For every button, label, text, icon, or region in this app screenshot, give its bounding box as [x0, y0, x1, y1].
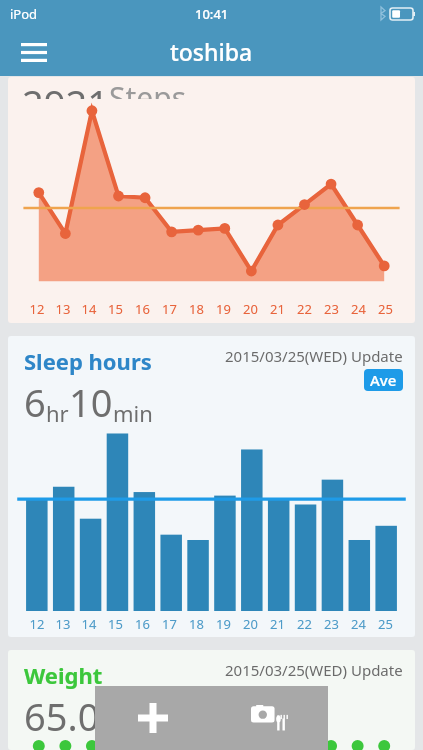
staticText: toshiba — [170, 36, 253, 67]
staticText: 23 — [318, 300, 345, 318]
button[interactable]: Photo meal — [211, 686, 328, 750]
staticText: 2921 — [22, 77, 109, 99]
staticText: 24 — [345, 615, 372, 633]
button[interactable]: Sleep hours — [8, 336, 415, 637]
staticText: 16 — [129, 300, 156, 318]
staticText: 6 — [24, 376, 46, 428]
staticText: 20 — [237, 615, 264, 633]
staticText: 13 — [50, 615, 76, 633]
staticText: 16 — [129, 615, 156, 633]
staticText: 18 — [183, 615, 210, 633]
staticText: hr — [46, 398, 69, 428]
button[interactable]: Weight — [8, 650, 415, 750]
staticText: 21 — [264, 300, 291, 318]
staticText: 15 — [102, 615, 129, 633]
staticText: 17 — [156, 300, 183, 318]
staticText: 22 — [291, 615, 318, 633]
staticText: 18 — [183, 300, 210, 318]
staticText: 25 — [372, 300, 399, 318]
staticText: Sleep hours — [24, 346, 152, 376]
staticText: 23 — [318, 615, 345, 633]
staticText: min — [113, 398, 153, 428]
staticText: 17 — [156, 615, 183, 633]
staticText: 14 — [76, 300, 102, 318]
staticText: 22 — [291, 300, 318, 318]
staticText: 21 — [264, 615, 291, 633]
staticText: 24 — [345, 300, 372, 318]
staticText: 2015/03/25(WED) Update — [225, 660, 403, 680]
button[interactable]: 2921 — [8, 77, 415, 323]
staticText: 12 — [24, 615, 50, 633]
staticText: 25 — [372, 615, 399, 633]
staticText: Ave — [370, 370, 397, 390]
staticText: Weight — [24, 660, 103, 690]
button[interactable]: Menu — [12, 30, 56, 74]
staticText: 19 — [210, 615, 237, 633]
staticText: 65.0 — [24, 690, 100, 742]
staticText: iPod — [10, 5, 38, 23]
staticText: 10 — [69, 376, 113, 428]
staticText: 2015/03/25(WED) Update — [225, 346, 403, 366]
staticText: 15 — [102, 300, 129, 318]
button[interactable]: Ave — [370, 370, 397, 390]
staticText: 19 — [210, 300, 237, 318]
staticText: 12 — [24, 300, 50, 318]
button[interactable]: Add — [95, 686, 211, 750]
staticText: 14 — [76, 615, 102, 633]
staticText: Steps — [109, 77, 187, 99]
staticText: 10:41 — [195, 5, 229, 23]
staticText: 20 — [237, 300, 264, 318]
staticText: 13 — [50, 300, 76, 318]
